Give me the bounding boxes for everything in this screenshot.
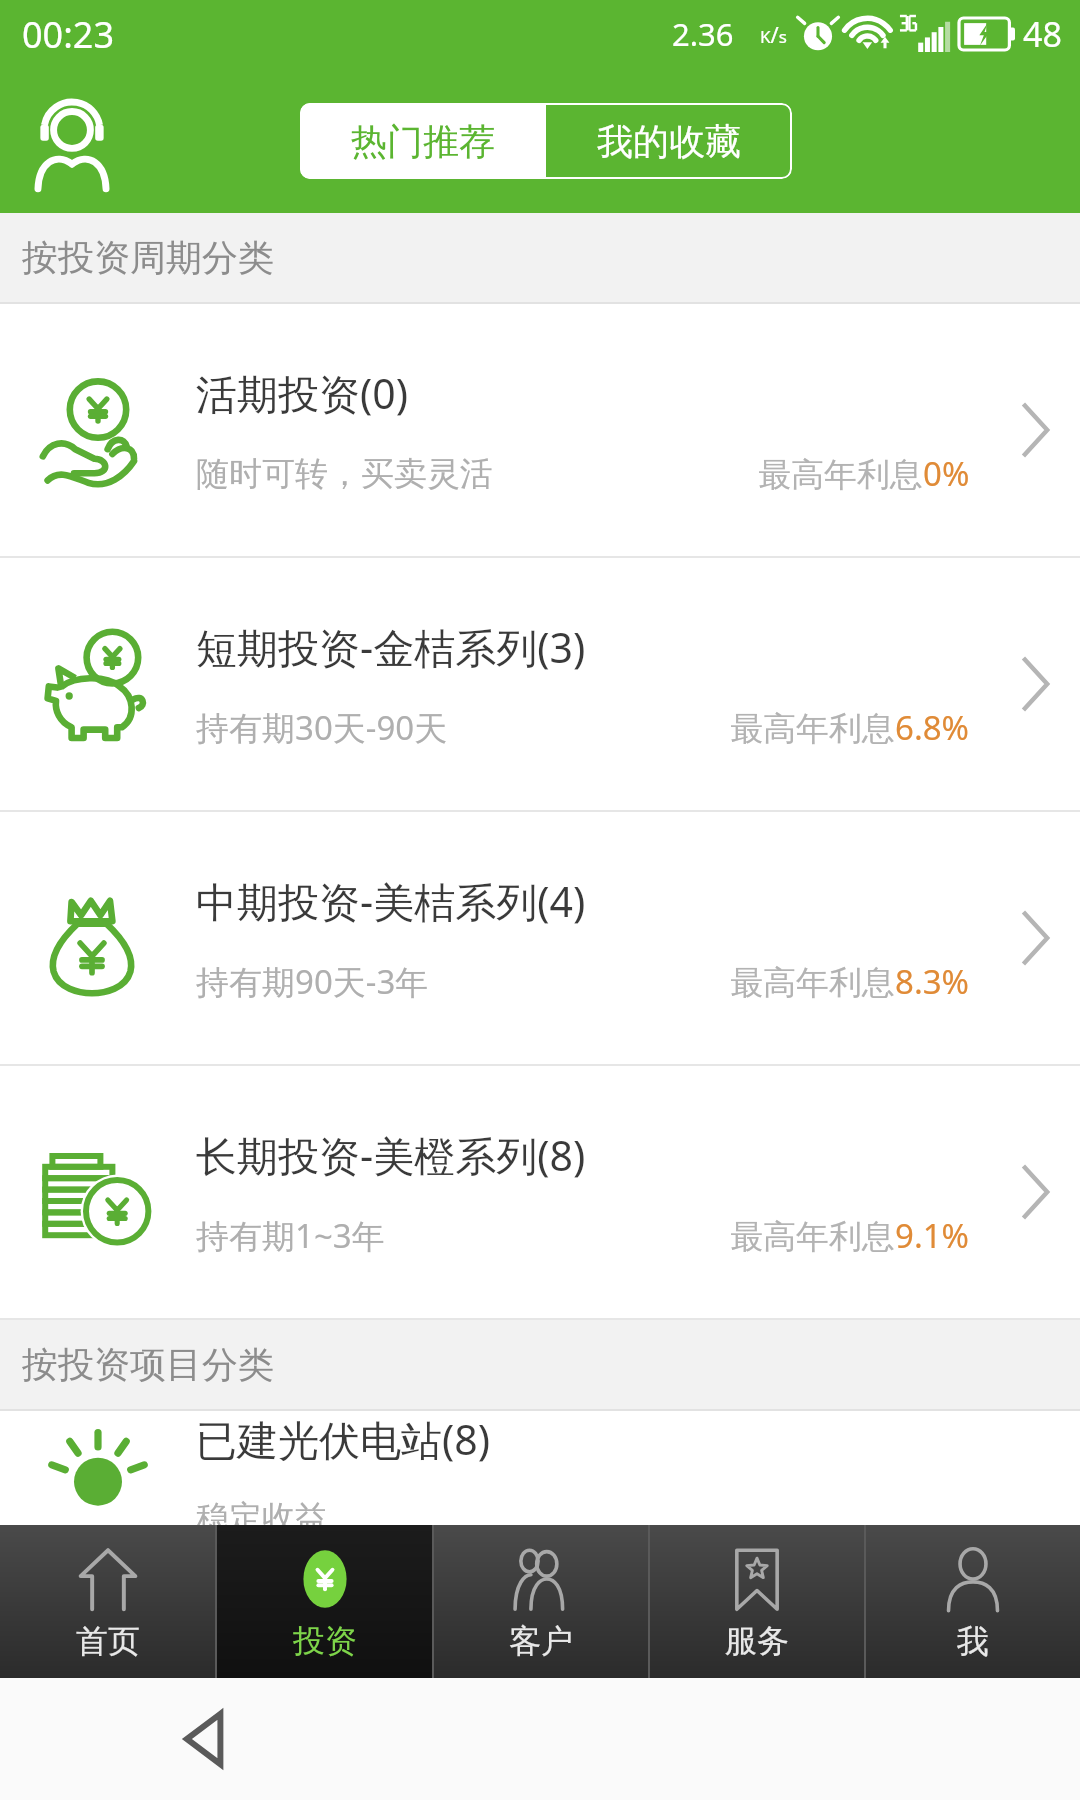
- button[interactable]: 长期投资-美橙系列(8): [0, 1066, 1080, 1318]
- staticText: 00:23: [22, 10, 115, 59]
- staticText: 投资: [293, 1621, 357, 1661]
- staticText: 客户: [509, 1621, 573, 1661]
- button[interactable]: 短期投资-金桔系列(3): [0, 558, 1080, 810]
- staticText: 活期投资(0): [196, 365, 409, 421]
- staticText: 按投资项目分类: [22, 1342, 274, 1387]
- button[interactable]: 我: [866, 1525, 1080, 1678]
- staticText: 最高年利息6.8%: [730, 705, 970, 750]
- staticText: 按投资周期分类: [22, 235, 274, 280]
- staticText: 持有期30天-90天: [196, 705, 448, 750]
- staticText: 长期投资-美橙系列(8): [196, 1127, 586, 1183]
- staticText: 中期投资-美桔系列(4): [196, 873, 586, 929]
- button[interactable]: 投资: [217, 1525, 432, 1678]
- staticText: 48: [1023, 11, 1062, 57]
- staticText: 2.36: [672, 13, 734, 55]
- staticText: 最高年利息9.1%: [730, 1213, 970, 1258]
- button[interactable]: 已建光伏电站(8): [0, 1411, 1080, 1525]
- staticText: 短期投资-金桔系列(3): [196, 619, 586, 675]
- staticText: 服务: [725, 1621, 789, 1661]
- staticText: 随时可转，买卖灵活: [196, 453, 493, 495]
- staticText: 持有期90天-3年: [196, 959, 429, 1004]
- button[interactable]: 我的收藏: [546, 103, 792, 179]
- button[interactable]: 服务: [650, 1525, 864, 1678]
- button[interactable]: Back: [170, 1704, 240, 1774]
- staticText: 最高年利息0%: [758, 451, 970, 496]
- button[interactable]: 中期投资-美桔系列(4): [0, 812, 1080, 1064]
- button[interactable]: 首页: [0, 1525, 215, 1678]
- button[interactable]: 活期投资(0): [0, 304, 1080, 556]
- staticText: K/s: [760, 19, 787, 49]
- staticText: 已建光伏电站(8): [196, 1411, 491, 1467]
- staticText: 热门推荐: [351, 119, 495, 164]
- staticText: 我: [957, 1621, 989, 1661]
- staticText: 我的收藏: [597, 119, 741, 164]
- button[interactable]: Customer service: [26, 95, 118, 187]
- staticText: 首页: [76, 1621, 140, 1661]
- button[interactable]: 客户: [434, 1525, 648, 1678]
- button[interactable]: 热门推荐: [300, 103, 546, 179]
- staticText: 持有期1~3年: [196, 1213, 385, 1258]
- staticText: 最高年利息8.3%: [730, 959, 970, 1004]
- staticText: 稳定收益: [196, 1497, 328, 1525]
